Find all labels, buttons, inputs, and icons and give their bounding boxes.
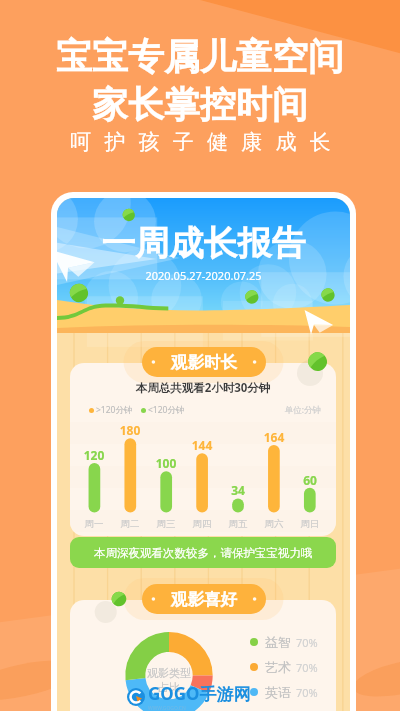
- staticText: 34: [218, 482, 258, 498]
- staticText: 周六: [254, 518, 294, 530]
- staticText: 占比: [139, 680, 199, 694]
- staticText: 周四: [182, 518, 222, 530]
- staticText: 本周深夜观看次数较多，请保护宝宝视力哦: [94, 546, 313, 560]
- staticText: 100: [146, 455, 186, 471]
- staticText: 宝宝专属儿童空间: [56, 34, 344, 79]
- staticText: 60: [290, 472, 330, 488]
- staticText: 164: [254, 429, 294, 445]
- staticText: 呵护孩子健康成长: [70, 129, 344, 155]
- button[interactable]: 观影时长: [142, 347, 266, 377]
- staticText: 一周成长报告: [57, 222, 350, 265]
- staticText: >120分钟: [96, 404, 133, 416]
- staticText: 2020.05.27-2020.07.25: [57, 268, 350, 283]
- staticText: 周二: [110, 518, 150, 530]
- staticText: 180: [110, 422, 150, 438]
- staticText: 周一: [74, 518, 114, 530]
- staticText: 单位:分钟: [241, 404, 321, 416]
- staticText: 观影时长: [171, 352, 237, 373]
- staticText: 英语: [265, 684, 291, 700]
- staticText: WWW.GOGO.CN: [148, 705, 186, 711]
- staticText: 益智: [265, 634, 291, 650]
- staticText: <120分钟: [148, 404, 185, 416]
- staticText: 周日: [290, 518, 330, 530]
- button[interactable]: 本周深夜观看次数较多，请保护宝宝视力哦: [70, 537, 336, 568]
- staticText: 70%: [296, 660, 318, 675]
- staticText: GOGO手游网: [148, 682, 251, 705]
- staticText: 周三: [146, 518, 186, 530]
- staticText: 70%: [296, 635, 318, 650]
- staticText: 观影喜好: [171, 589, 237, 610]
- staticText: 艺术: [265, 659, 291, 675]
- staticText: 120: [74, 447, 114, 463]
- staticText: 本周总共观看2小时30分钟: [70, 380, 336, 396]
- staticText: 70%: [296, 685, 318, 700]
- staticText: 家长掌控时间: [92, 82, 308, 127]
- staticText: 周五: [218, 518, 258, 530]
- staticText: 观影类型: [139, 666, 199, 680]
- button[interactable]: 观影喜好: [142, 584, 266, 614]
- staticText: 144: [182, 437, 222, 453]
